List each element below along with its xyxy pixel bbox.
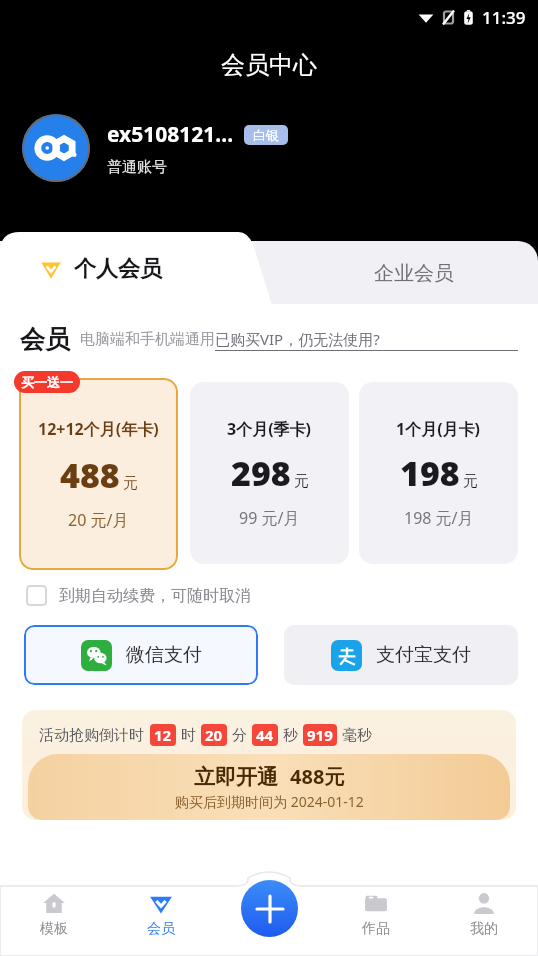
button[interactable]: 3个月(季卡)	[190, 382, 349, 564]
staticText: 3个月(季卡)	[227, 418, 312, 440]
staticText: 44	[256, 725, 274, 745]
staticText: 919	[307, 725, 333, 745]
staticText: 作品	[362, 920, 390, 938]
staticText: 购买后到期时间为 2024-01-12	[175, 792, 364, 811]
staticText: 会员	[20, 324, 70, 355]
staticText: 时	[181, 726, 196, 745]
button[interactable]: 模板	[0, 890, 107, 938]
staticText: 白银	[253, 127, 279, 143]
staticText: 12+12个月(年卡)	[38, 418, 159, 440]
staticText: 买一送一	[21, 374, 73, 390]
staticText: 198	[400, 450, 460, 496]
staticText: 立即开通	[194, 764, 278, 790]
staticText: 298	[231, 450, 291, 496]
staticText: 1个月(月卡)	[396, 418, 481, 440]
staticText: 会员	[147, 920, 175, 938]
staticText: 活动抢购倒计时	[39, 726, 144, 745]
button[interactable]: 已购买VIP，仍无法使用?	[215, 329, 518, 351]
staticText: 企业会员	[374, 261, 454, 286]
button[interactable]: 会员	[107, 890, 214, 938]
staticText: 20	[205, 725, 223, 745]
staticText: 毫秒	[342, 726, 372, 745]
staticText: ex5108121...	[107, 120, 234, 149]
staticText: 微信支付	[126, 643, 202, 667]
button[interactable]: 我的	[430, 890, 538, 938]
staticText: 会员中心	[221, 50, 317, 80]
staticText: 元	[123, 474, 138, 493]
button[interactable]: Create	[241, 880, 298, 937]
staticText: 已购买VIP，仍无法使用?	[215, 329, 380, 349]
button[interactable]: 支付宝支付	[284, 625, 518, 685]
button[interactable]: 企业会员	[290, 241, 538, 305]
staticText: 普通账号	[107, 158, 167, 177]
staticText: 到期自动续费，可随时取消	[59, 586, 251, 606]
staticText: 支付宝支付	[376, 643, 471, 667]
staticText: 20 元/月	[68, 509, 129, 531]
button[interactable]: 个人会员	[0, 232, 250, 305]
staticText: 电脑端和手机端通用	[80, 330, 215, 349]
staticText: 分	[232, 726, 247, 745]
staticText: 秒	[283, 726, 298, 745]
button[interactable]: 12+12个月(年卡)	[19, 378, 178, 570]
staticText: 元	[294, 472, 309, 491]
staticText: 488	[60, 452, 120, 498]
staticText: 11:39	[482, 6, 526, 29]
button[interactable]: 到期自动续费，可随时取消	[26, 585, 251, 606]
staticText: 488元	[290, 763, 345, 790]
button[interactable]: 微信支付	[24, 625, 258, 685]
staticText: 我的	[470, 920, 498, 938]
staticText: 99 元/月	[239, 507, 300, 529]
button[interactable]: 作品	[322, 890, 430, 938]
staticText: 个人会员	[74, 255, 162, 283]
staticText: 12	[154, 725, 172, 745]
staticText: 元	[463, 472, 478, 491]
button[interactable]: 1个月(月卡)	[359, 382, 518, 564]
staticText: 198 元/月	[404, 507, 474, 529]
staticText: 模板	[40, 920, 68, 938]
button[interactable]: 立即开通	[28, 754, 510, 820]
